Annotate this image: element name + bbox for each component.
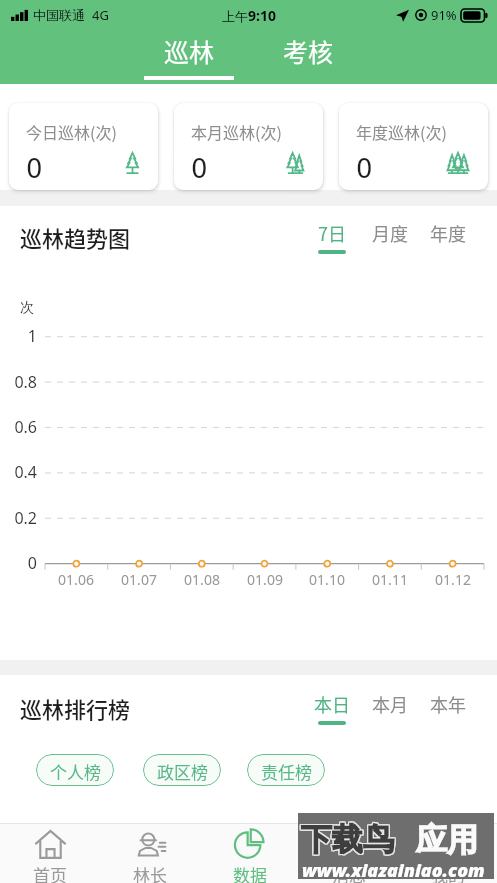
staticText: 本年	[430, 691, 466, 717]
staticText: 今日巡林(次)	[26, 120, 117, 143]
staticText: 0	[356, 154, 373, 184]
staticText: 01.09	[235, 570, 295, 589]
button[interactable]: 消息	[299, 824, 398, 883]
staticText: 责任榜	[261, 759, 312, 784]
button[interactable]: 年度巡林(次)	[339, 103, 488, 190]
staticText: 9:10	[248, 6, 276, 25]
button[interactable]: 本年	[418, 691, 478, 725]
button[interactable]: 巡林	[144, 33, 234, 80]
button[interactable]: 政区榜	[143, 754, 221, 786]
staticText: 应用	[416, 820, 478, 859]
staticText: 次	[20, 299, 34, 317]
staticText: 本日	[314, 691, 350, 717]
button[interactable]: 本月	[360, 691, 420, 725]
staticText: 消息	[332, 862, 366, 883]
staticText: 下载鸟	[300, 819, 393, 858]
staticText: 本月巡林(次)	[191, 120, 282, 143]
staticText: 首页	[33, 862, 67, 883]
staticText: 巡林排行榜	[20, 692, 131, 724]
staticText: 年度	[430, 220, 466, 246]
staticText: 01.12	[423, 570, 483, 589]
button[interactable]: 年度	[418, 220, 478, 254]
button[interactable]: 个人榜	[36, 754, 114, 786]
staticText: 下载鸟	[300, 820, 393, 859]
staticText: 01.08	[172, 570, 232, 589]
staticText: 1	[0, 325, 37, 347]
staticText: 0	[191, 154, 208, 184]
staticText: www.xiazainiao.com	[302, 858, 485, 883]
staticText: 我的	[431, 862, 465, 883]
button[interactable]: 月度	[360, 220, 420, 254]
staticText: 0	[26, 154, 43, 184]
staticText: 巡林趋势图	[20, 221, 131, 253]
staticText: 考核	[283, 33, 334, 69]
staticText: 下载鸟	[302, 819, 395, 858]
staticText: 0.2	[0, 507, 37, 529]
staticText: 0.4	[0, 461, 37, 483]
staticText: 4G	[92, 6, 109, 24]
staticText: 01.11	[360, 570, 420, 589]
staticText: 0.8	[0, 371, 37, 393]
staticText: 下载鸟	[301, 819, 394, 858]
staticText: 年度巡林(次)	[356, 120, 447, 143]
staticText: 个人榜	[50, 759, 101, 784]
staticText: 下载鸟	[300, 821, 393, 860]
staticText: 7日	[318, 220, 346, 246]
staticText: 01.07	[109, 570, 169, 589]
button[interactable]: 今日巡林(次)	[9, 103, 158, 190]
staticText: 政区榜	[157, 759, 208, 784]
button[interactable]: 本日	[302, 691, 362, 725]
staticText: 下载鸟	[301, 821, 394, 860]
button[interactable]: 本月巡林(次)	[174, 103, 323, 190]
button[interactable]: 考核	[263, 33, 353, 80]
button[interactable]: 数据	[200, 824, 299, 883]
staticText: 01.06	[46, 570, 106, 589]
button[interactable]: 7日	[302, 220, 362, 254]
staticText: 91%	[431, 6, 457, 24]
staticText: 01.10	[297, 570, 357, 589]
staticText: 巡林	[164, 33, 215, 69]
staticText: 0.6	[0, 416, 37, 438]
staticText: 数据	[233, 862, 267, 883]
staticText: 上午	[222, 8, 248, 24]
button[interactable]: 林长	[100, 824, 200, 883]
staticText: 下载鸟	[301, 820, 394, 859]
staticText: 0	[0, 552, 37, 574]
button[interactable]: 我的	[398, 824, 497, 883]
staticText: 下载鸟	[302, 820, 395, 859]
staticText: 中国联通	[33, 7, 85, 23]
staticText: 下载鸟	[302, 821, 395, 860]
staticText: 本月	[372, 691, 408, 717]
staticText: 林长	[133, 862, 167, 883]
button[interactable]: 首页	[0, 824, 100, 883]
button[interactable]: 责任榜	[247, 754, 325, 786]
staticText: 月度	[372, 220, 408, 246]
